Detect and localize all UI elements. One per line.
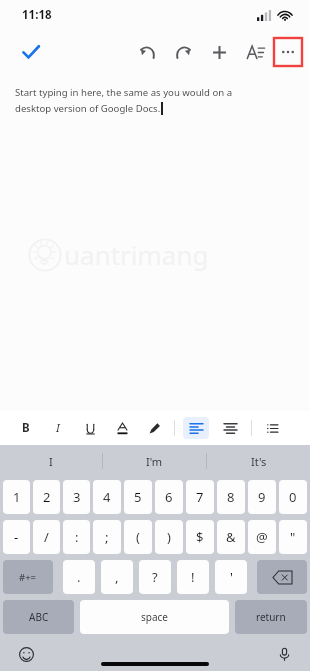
staticText: ABC [29, 610, 49, 624]
button[interactable]: ) [155, 520, 183, 554]
button[interactable]: Voice input [272, 642, 296, 666]
button[interactable]: #+= [3, 560, 53, 594]
button[interactable]: - [3, 520, 30, 554]
staticText: 5 [134, 488, 142, 506]
staticText: space [141, 610, 168, 624]
button[interactable]: ' [215, 560, 247, 594]
button[interactable]: @ [248, 520, 276, 554]
staticText: - [14, 528, 19, 546]
staticText: uantrimang [64, 237, 209, 272]
staticText: desktop version of Google Docs. [15, 102, 161, 115]
staticText: Start typing in here, the same as you wo… [15, 86, 233, 99]
staticText: It's [251, 454, 267, 469]
staticText: 3 [73, 488, 81, 506]
staticText: ! [191, 568, 195, 586]
button[interactable]: ? [139, 560, 171, 594]
button[interactable]: Done [14, 35, 48, 69]
staticText: 2 [43, 488, 51, 506]
button[interactable]: Underline [74, 411, 106, 445]
button[interactable]: & [217, 520, 245, 554]
staticText: 1 [13, 488, 21, 506]
button[interactable]: , [101, 560, 133, 594]
button[interactable]: space [80, 600, 229, 634]
staticText: & [226, 528, 236, 546]
button[interactable]: Backspace [257, 560, 307, 594]
staticText: return [256, 610, 286, 624]
button[interactable]: 4 [93, 480, 121, 514]
button[interactable]: I'm [103, 445, 206, 477]
button[interactable]: ABC [3, 600, 74, 634]
button[interactable]: 5 [124, 480, 152, 514]
staticText: . [77, 568, 81, 586]
button[interactable]: I [0, 445, 102, 477]
staticText: $ [196, 528, 204, 546]
button[interactable]: return [235, 600, 307, 634]
button[interactable]: 0 [279, 480, 307, 514]
staticText: I'm [146, 454, 163, 469]
staticText: I [49, 454, 53, 469]
button[interactable]: Bulleted list [256, 411, 288, 445]
button[interactable]: 7 [186, 480, 214, 514]
staticText: 7 [196, 488, 204, 506]
staticText: B [22, 420, 30, 436]
button[interactable]: More options [274, 38, 302, 66]
button[interactable]: $ [186, 520, 214, 554]
button[interactable]: 6 [155, 480, 183, 514]
staticText: I [56, 420, 60, 436]
button[interactable]: : [63, 520, 90, 554]
button[interactable]: " [279, 520, 307, 554]
button[interactable]: 9 [248, 480, 276, 514]
button[interactable]: It's [207, 445, 310, 477]
button[interactable]: Undo [132, 37, 162, 67]
button[interactable]: ( [124, 520, 152, 554]
staticText: 6 [165, 488, 173, 506]
button[interactable]: Text colour [106, 411, 138, 445]
staticText: ( [136, 528, 140, 546]
button[interactable]: 3 [63, 480, 90, 514]
button[interactable]: 8 [217, 480, 245, 514]
button[interactable]: Start typing in here, the same as you wo… [0, 74, 310, 411]
staticText: 9 [258, 488, 266, 506]
button[interactable]: Align left [179, 411, 213, 445]
button[interactable]: Align centre [213, 411, 247, 445]
staticText: : [75, 528, 79, 546]
button[interactable]: B [10, 411, 42, 445]
staticText: ; [105, 528, 109, 546]
staticText: / [44, 528, 49, 546]
button[interactable]: . [63, 560, 95, 594]
staticText: 4 [103, 488, 111, 506]
button[interactable]: Emoji [14, 642, 38, 666]
staticText: 11:18 [22, 7, 52, 23]
staticText: , [115, 568, 119, 586]
staticText: 0 [289, 488, 297, 506]
button[interactable]: Highlight [138, 411, 170, 445]
button[interactable]: Redo [168, 37, 198, 67]
staticText: " [290, 528, 296, 546]
staticText: ? [152, 568, 158, 586]
button[interactable]: Text formatting [240, 37, 270, 67]
button[interactable]: ; [93, 520, 121, 554]
button[interactable]: ! [177, 560, 209, 594]
staticText: ) [167, 528, 171, 546]
button[interactable]: 1 [3, 480, 30, 514]
staticText: #+= [19, 571, 37, 584]
button[interactable]: / [33, 520, 60, 554]
button[interactable]: I [42, 411, 74, 445]
button[interactable]: 2 [33, 480, 60, 514]
button[interactable]: Insert [204, 37, 234, 67]
staticText: 8 [227, 488, 235, 506]
staticText: @ [256, 528, 268, 546]
staticText: ' [230, 568, 233, 586]
